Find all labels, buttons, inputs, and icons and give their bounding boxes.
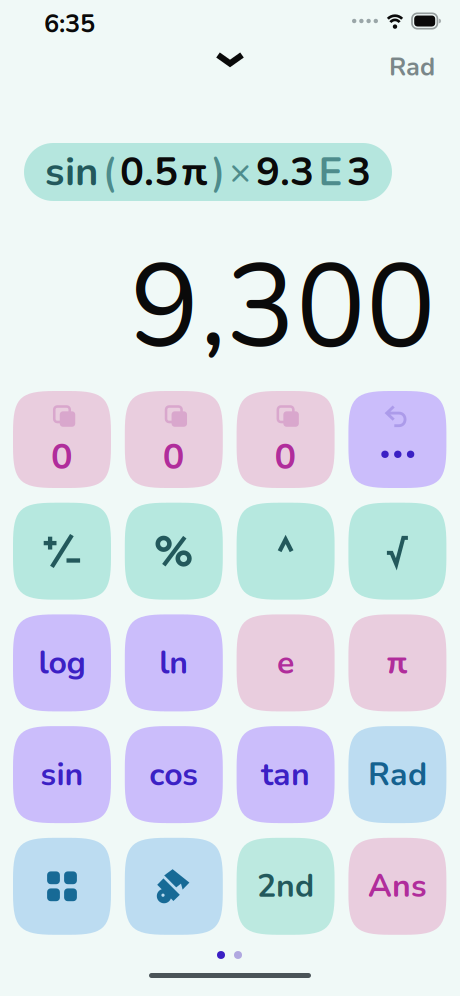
button[interactable]: Theme (125, 838, 223, 935)
button[interactable]: Ans (348, 838, 446, 935)
staticText: ( (102, 145, 115, 199)
button[interactable]: Percent (125, 503, 223, 600)
button[interactable]: Plus minus (13, 503, 111, 600)
button[interactable]: Rad (348, 726, 446, 823)
staticText: Rad (368, 753, 427, 796)
staticText: 9.3 (256, 145, 314, 199)
staticText: 9,300 (130, 228, 436, 386)
staticText: 3 (347, 145, 371, 199)
button[interactable]: Collapse keypad (205, 42, 255, 77)
staticText: cos (149, 753, 198, 796)
button[interactable]: Memory, 0 (237, 391, 335, 488)
button[interactable]: Square root (348, 503, 446, 600)
staticText: 0 (275, 432, 297, 481)
staticText: log (38, 641, 85, 685)
staticText: × (229, 147, 251, 196)
button[interactable]: Memory, 0 (125, 391, 223, 488)
staticText: 6:35 (44, 7, 95, 41)
button[interactable]: sin (13, 726, 111, 823)
button[interactable]: Undo, more options (348, 391, 446, 488)
button[interactable]: 2nd (237, 838, 335, 935)
button[interactable]: e (237, 614, 335, 711)
button[interactable]: sin (24, 143, 392, 201)
staticText: sin (45, 145, 98, 199)
staticText: Ans (368, 864, 427, 908)
staticText: 2nd (257, 864, 314, 908)
button[interactable]: Keypad layout (13, 838, 111, 935)
button[interactable]: tan (237, 726, 335, 823)
button[interactable]: Memory, 0 (13, 391, 111, 488)
staticText: π (182, 145, 207, 199)
staticText: tan (261, 753, 310, 796)
button[interactable]: cos (125, 726, 223, 823)
staticText: π (387, 641, 407, 685)
staticText: e (277, 641, 294, 685)
staticText: E (318, 145, 342, 199)
button[interactable]: Power (237, 503, 335, 600)
staticText: 0 (51, 432, 73, 481)
button[interactable]: Rad (383, 46, 441, 89)
staticText: 0.5 (120, 145, 178, 199)
staticText: 0 (163, 432, 185, 481)
button[interactable]: π (348, 614, 446, 711)
button[interactable]: log (13, 614, 111, 711)
button[interactable]: ln (125, 614, 223, 711)
staticText: Rad (389, 50, 435, 85)
staticText: ln (159, 641, 188, 685)
staticText: ) (212, 145, 225, 199)
staticText: sin (40, 753, 83, 796)
